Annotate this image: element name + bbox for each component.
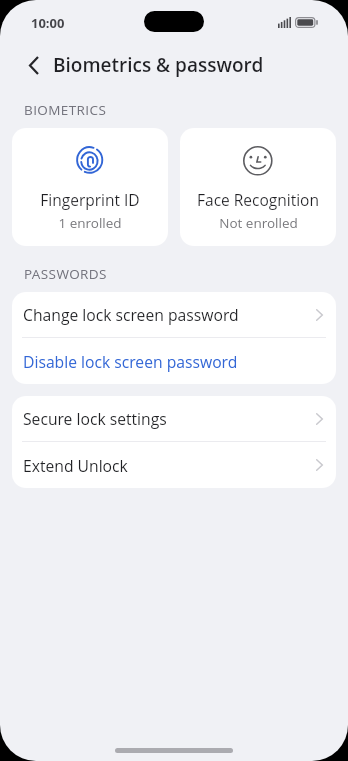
staticText: Change lock screen password	[23, 304, 239, 325]
staticText: Extend Unlock	[23, 455, 128, 476]
staticText: Fingerprint ID	[40, 189, 140, 210]
staticText: Disable lock screen password	[23, 351, 238, 372]
button[interactable]: Change lock screen password	[12, 292, 336, 337]
staticText: Face Recognition	[197, 189, 319, 210]
staticText: PASSWORDS	[24, 265, 107, 283]
button[interactable]: Secure lock settings	[12, 396, 336, 441]
button[interactable]: Fingerprint ID	[12, 128, 168, 246]
button[interactable]: Back	[19, 50, 49, 80]
staticText: Biometrics & password	[53, 52, 264, 78]
button[interactable]: Disable lock screen password	[12, 338, 336, 384]
button[interactable]: Face Recognition	[180, 128, 336, 246]
staticText: 1 enrolled	[58, 214, 122, 232]
staticText: Secure lock settings	[23, 408, 167, 429]
staticText: Not enrolled	[219, 214, 298, 232]
staticText: 10:00	[31, 14, 65, 32]
button[interactable]: Extend Unlock	[12, 442, 336, 488]
staticText: BIOMETRICS	[24, 101, 107, 119]
